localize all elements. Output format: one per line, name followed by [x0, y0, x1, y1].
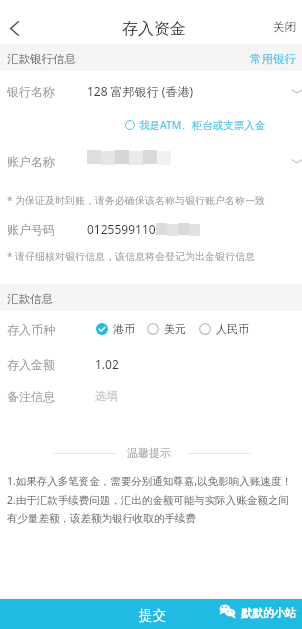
- staticText: 美元: [164, 322, 186, 336]
- button[interactable]: 提交: [0, 599, 302, 629]
- button[interactable]: 美元: [147, 322, 186, 336]
- button[interactable]: 常用银行: [242, 48, 302, 70]
- staticText: 存入金额: [7, 357, 55, 372]
- staticText: 1.如果存入多笔资金，需要分别通知尊嘉,以免影响入账速度！ 2.由于汇款手续费问…: [7, 474, 297, 526]
- button[interactable]: 银行名称: [0, 76, 302, 106]
- staticText: 存入币种: [7, 322, 55, 337]
- staticText: 账户号码: [7, 222, 55, 237]
- staticText: * 请仔细核对银行信息，该信息将会登记为出金银行信息: [7, 249, 256, 263]
- staticText: 关闭: [273, 20, 296, 34]
- staticText: 0125599110: [87, 221, 156, 237]
- staticText: 汇款信息: [7, 292, 53, 306]
- staticText: 温馨提示: [127, 446, 171, 460]
- button[interactable]: 港币: [96, 322, 135, 336]
- button[interactable]: 备注信息: [0, 381, 302, 411]
- staticText: 汇款银行信息: [7, 52, 76, 66]
- button[interactable]: Back: [0, 14, 28, 42]
- staticText: 我是ATM、柜台或支票入金: [139, 118, 266, 132]
- staticText: 1.02: [95, 356, 119, 372]
- staticText: * 为保证及时到账，请务必确保该名称与银行账户名称一致: [7, 193, 266, 207]
- staticText: 备注信息: [7, 389, 55, 404]
- button[interactable]: 我是ATM、柜台或支票入金: [125, 118, 266, 132]
- staticText: 默默的小站: [241, 606, 296, 620]
- button[interactable]: 存入金额: [0, 349, 302, 379]
- button[interactable]: 账户名称: [0, 146, 302, 176]
- staticText: 常用银行: [250, 52, 296, 66]
- staticText: 提交: [139, 607, 166, 624]
- staticText: 选填: [95, 389, 118, 403]
- staticText: 账户名称: [7, 154, 55, 169]
- button[interactable]: 人民币: [199, 322, 249, 336]
- staticText: 人民币: [216, 322, 249, 336]
- button[interactable]: 关闭: [265, 17, 302, 37]
- button[interactable]: 账户号码: [0, 214, 302, 244]
- staticText: 港币: [113, 322, 135, 336]
- staticText: 银行名称: [7, 84, 55, 99]
- staticText: 128 富邦银行 (香港): [87, 83, 194, 99]
- staticText: 存入资金: [122, 19, 186, 39]
